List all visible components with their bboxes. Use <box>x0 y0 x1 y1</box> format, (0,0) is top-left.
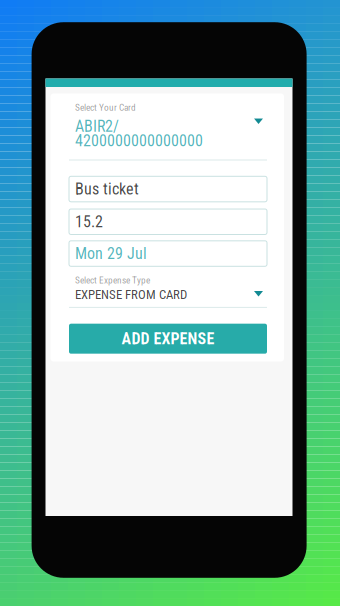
staticText: 4200000000000000 <box>75 131 203 150</box>
staticText: 15.2 <box>75 212 103 231</box>
staticText: Bus ticket <box>75 180 139 198</box>
staticText: ABIR2/ <box>75 117 119 136</box>
staticText: ADD EXPENSE <box>121 329 214 348</box>
staticText: Mon 29 Jul <box>75 244 147 263</box>
button[interactable]: Mon 29 Jul <box>69 241 267 266</box>
staticText: EXPENSE FROM CARD <box>75 287 187 302</box>
staticText: Select Your Card <box>75 102 136 113</box>
button[interactable]: 15.2 <box>69 209 267 234</box>
staticText: Select Expense Type <box>75 275 150 286</box>
button[interactable]: ADD EXPENSE <box>69 324 267 354</box>
button[interactable]: Bus ticket <box>69 176 267 202</box>
